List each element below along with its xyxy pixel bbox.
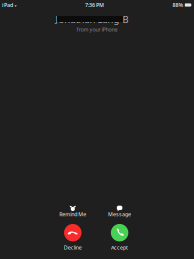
button[interactable]: Decline bbox=[56, 222, 90, 253]
staticText: Jonathan Lang-B bbox=[55, 13, 128, 26]
staticText: 88% bbox=[173, 1, 184, 9]
button[interactable]: Message bbox=[100, 201, 139, 221]
staticText: 7:36 PM bbox=[85, 1, 104, 9]
staticText: iPad bbox=[2, 1, 13, 9]
button[interactable]: Remind Me bbox=[51, 201, 94, 221]
button[interactable]: Accept bbox=[103, 222, 136, 253]
staticText: Remind Me bbox=[59, 211, 86, 218]
staticText: Message bbox=[108, 211, 131, 218]
staticText: Decline bbox=[64, 244, 82, 251]
staticText: Accept bbox=[111, 244, 128, 251]
staticText: from your iPhone bbox=[76, 26, 117, 33]
